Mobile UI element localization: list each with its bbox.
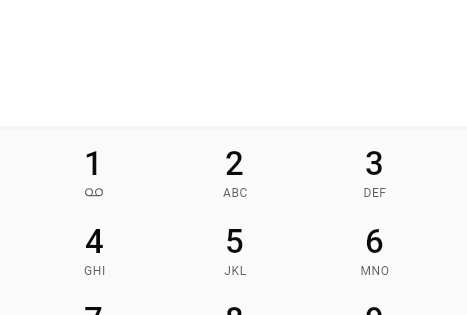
staticText: 1: [84, 144, 103, 183]
button[interactable]: 4: [23, 222, 164, 300]
button[interactable]: 1: [23, 144, 164, 222]
staticText: 8: [225, 300, 244, 315]
button[interactable]: 8: [164, 300, 304, 315]
staticText: GHI: [84, 264, 106, 278]
staticText: JKL: [224, 264, 247, 278]
button[interactable]: 5: [164, 222, 304, 300]
button[interactable]: 7: [23, 300, 164, 315]
staticText: 2: [225, 144, 244, 183]
staticText: 6: [365, 222, 384, 261]
button[interactable]: 9: [304, 300, 444, 315]
button[interactable]: 2: [164, 144, 304, 222]
staticText: 7: [84, 300, 103, 315]
staticText: 3: [365, 144, 384, 183]
staticText: DEF: [363, 186, 387, 200]
staticText: MNO: [360, 264, 390, 278]
staticText: ABC: [223, 186, 248, 200]
staticText: 4: [85, 222, 104, 261]
button[interactable]: 3: [304, 144, 444, 222]
button[interactable]: 6: [304, 222, 444, 300]
staticText: 5: [225, 222, 244, 261]
other: Voicemail: [85, 186, 103, 198]
staticText: 9: [365, 300, 384, 315]
